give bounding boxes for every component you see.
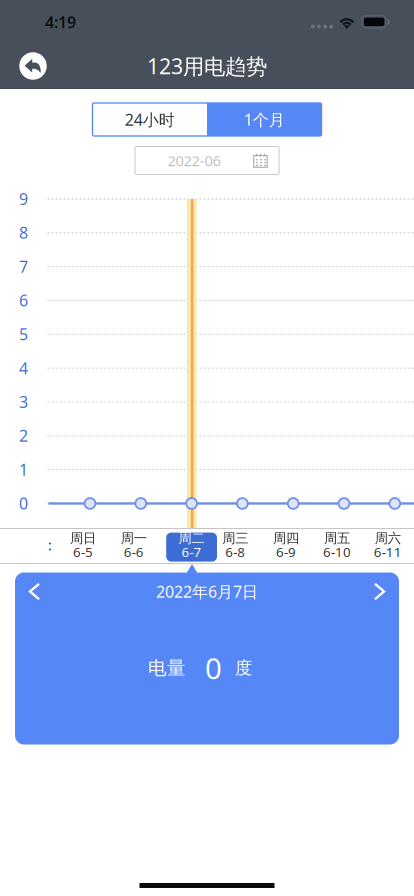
button[interactable]: 周六 [362,533,413,562]
staticText: 6-5 [73,543,93,561]
staticText: 周一 [121,530,147,547]
staticText: 7 [19,256,28,277]
staticText: 2022年6月7日 [156,581,258,602]
staticText: 8 [19,222,28,243]
staticText: 度 [235,657,252,679]
staticText: 6-6 [124,543,144,561]
staticText: 周五 [324,530,350,547]
button[interactable]: Back [11,44,55,88]
staticText: 0 [205,648,222,687]
staticText: 6-10 [323,543,351,561]
staticText: 3 [19,391,28,412]
staticText: 周二 [179,530,205,547]
button[interactable]: 周二 [166,533,217,562]
button[interactable]: 周四 [261,533,311,562]
staticText: 2 [19,425,28,446]
staticText: 1个月 [244,109,285,130]
staticText: 周三 [222,530,248,547]
staticText: 4 [19,357,28,378]
staticText: 9 [19,188,28,209]
staticText: 1 [19,459,28,480]
staticText: 周日 [70,530,96,547]
button[interactable]: 2022-06 [135,146,279,174]
button[interactable]: 周五 [311,533,362,562]
staticText: : [48,535,52,555]
button[interactable]: Next day [360,572,398,610]
staticText: 24小时 [125,109,175,130]
button[interactable]: 24小时 [92,103,207,136]
staticText: 周六 [375,530,401,547]
button[interactable]: 周日 [57,533,108,562]
staticText: 周四 [273,530,299,547]
button[interactable]: Previous day [15,572,53,610]
staticText: 6-9 [276,543,296,561]
staticText: 6-11 [374,543,402,561]
button[interactable]: 周三 [210,533,261,562]
staticText: 5 [19,323,28,345]
staticText: 6-8 [225,543,245,561]
staticText: 123用电趋势 [147,52,267,80]
staticText: 0 [19,493,28,514]
staticText: 电量 [148,656,186,679]
staticText: 4:19 [45,11,76,33]
button[interactable]: 1个月 [207,103,321,136]
staticText: 6 [19,290,28,311]
staticText: 2022-06 [167,151,220,170]
button[interactable]: 周一 [108,533,159,562]
staticText: 6-7 [182,543,202,561]
